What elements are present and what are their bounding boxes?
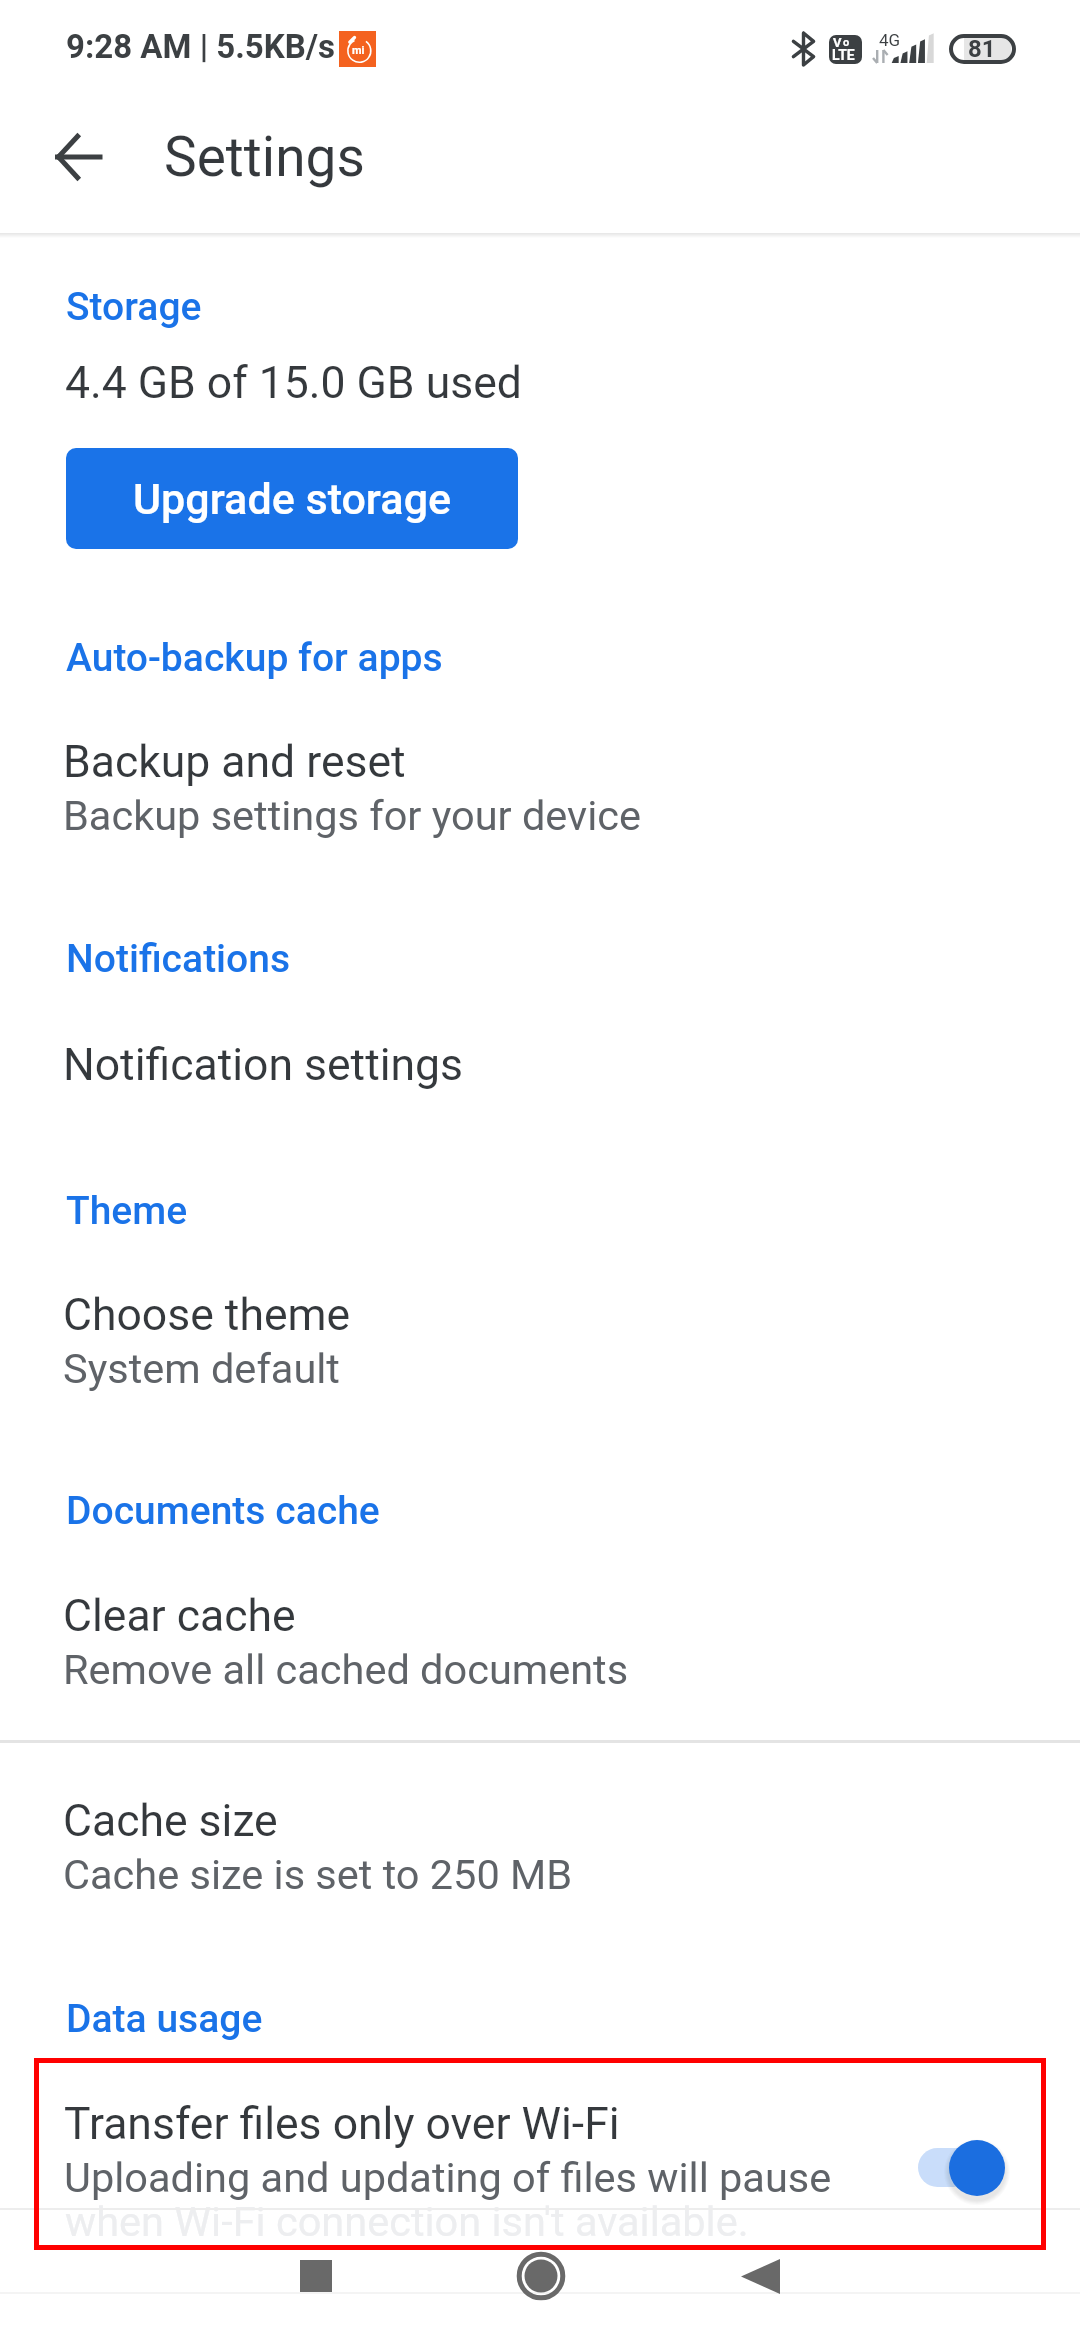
staticText: Clear cache (63, 1590, 296, 1642)
staticText: Upgrade storage (133, 474, 452, 524)
staticText: Data usage (66, 1996, 263, 2042)
button[interactable]: Upgrade storage (66, 448, 518, 549)
staticText: Theme (66, 1188, 188, 1234)
staticText: Uploading and updating of files will pau… (64, 2153, 832, 2202)
staticText: o (843, 36, 850, 49)
staticText: mi (352, 44, 365, 57)
staticText: when Wi-Fi connection isn't available. (65, 2197, 749, 2246)
staticText: 9:28 AM | 5.5KB/s (66, 27, 336, 66)
staticText: Remove all cached documents (63, 1645, 629, 1694)
staticText: 81 (968, 35, 996, 63)
staticText: Backup settings for your device (63, 791, 642, 840)
button[interactable]: Recent apps (256, 2236, 376, 2316)
staticText: System default (63, 1344, 340, 1393)
staticText: Choose theme (63, 1289, 351, 1341)
staticText: Notifications (66, 936, 291, 982)
button[interactable]: Back (56, 135, 100, 179)
button[interactable]: Notification settings (0, 1030, 1080, 1096)
staticText: 4.4 GB of 15.0 GB used (65, 357, 522, 409)
staticText: Notification settings (63, 1039, 464, 1091)
staticText: Documents cache (66, 1488, 380, 1534)
button[interactable]: Backup and reset (0, 727, 1080, 837)
staticText: Transfer files only over Wi-Fi (64, 2098, 620, 2150)
staticText: Auto-backup for apps (66, 635, 443, 681)
button[interactable]: Back (700, 2236, 820, 2316)
staticText: Cache size (63, 1795, 278, 1847)
button[interactable]: Home (481, 2236, 601, 2316)
staticText: Cache size is set to 250 MB (63, 1850, 573, 1899)
staticText: Backup and reset (63, 736, 406, 788)
button[interactable]: Cache size (0, 1786, 1080, 1896)
staticText: LTE (832, 47, 855, 63)
button[interactable]: Clear cache (0, 1581, 1080, 1691)
button[interactable]: Choose theme (0, 1280, 1080, 1390)
staticText: Storage (66, 284, 202, 330)
staticText: V (833, 35, 842, 50)
staticText: 4G (879, 30, 901, 50)
staticText: Settings (164, 125, 365, 189)
button[interactable]: Transfer files only over Wi-Fi (0, 2089, 1080, 2249)
